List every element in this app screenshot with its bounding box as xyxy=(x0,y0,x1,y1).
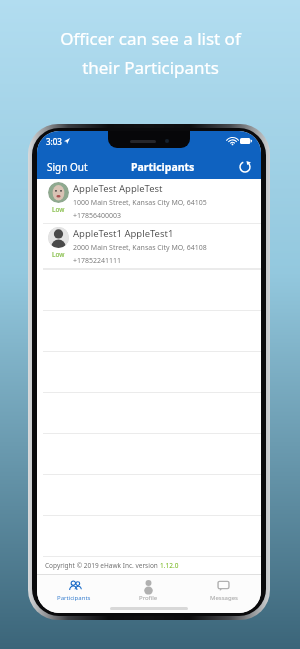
button[interactable]: Messages xyxy=(186,575,261,604)
staticText: +17856400003 xyxy=(73,211,122,221)
staticText: Low xyxy=(52,250,65,259)
button[interactable]: Low xyxy=(37,179,261,224)
button[interactable]: Refresh xyxy=(237,159,253,175)
staticText: AppleTest AppleTest xyxy=(73,182,163,195)
staticText: Participants xyxy=(57,594,91,602)
staticText: their Participants xyxy=(82,56,219,79)
staticText: Messages xyxy=(210,594,238,602)
staticText: 1.12.0 xyxy=(160,561,179,570)
staticText: Copyright © 2019 eHawk Inc. version xyxy=(45,561,160,570)
button[interactable]: Profile xyxy=(111,575,186,604)
staticText: 3:03 xyxy=(46,136,62,147)
staticText: 2000 Main Street, Kansas City MO, 64108 xyxy=(73,243,207,253)
staticText: 1000 Main Street, Kansas City MO, 64105 xyxy=(73,198,207,208)
staticText: Officer can see a list of xyxy=(60,27,241,50)
button[interactable]: Participants xyxy=(37,575,111,604)
staticText: Sign Out xyxy=(47,160,88,174)
staticText: AppleTest1 AppleTest1 xyxy=(73,227,174,240)
staticText: +17852241111 xyxy=(73,256,122,266)
button[interactable]: Sign Out xyxy=(45,157,90,177)
button[interactable]: Low xyxy=(37,224,261,269)
staticText: Low xyxy=(52,205,65,214)
staticText: Participants xyxy=(131,160,195,174)
staticText: Profile xyxy=(139,594,158,602)
